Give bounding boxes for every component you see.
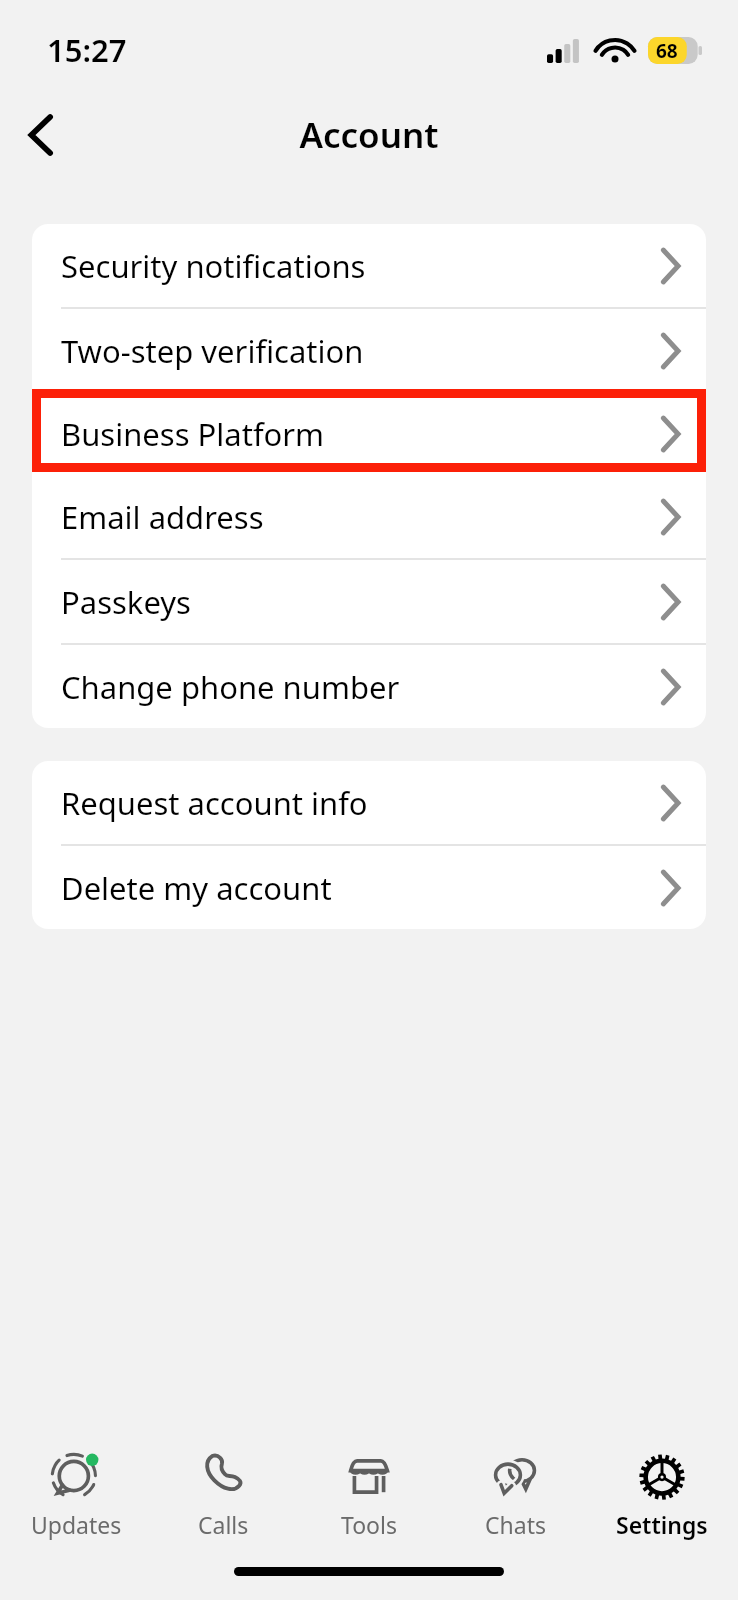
staticText: Calls (198, 1509, 249, 1540)
staticText: Settings (616, 1509, 708, 1540)
button[interactable]: Updates (6, 1443, 146, 1546)
staticText: Tools (341, 1509, 397, 1540)
staticText: Chats (485, 1509, 546, 1540)
button[interactable]: Chats (445, 1443, 585, 1546)
staticText: Request account info (61, 782, 661, 824)
button[interactable]: Change phone number (32, 645, 706, 728)
staticText: Passkeys (61, 581, 661, 623)
button[interactable]: Security notifications (32, 224, 706, 307)
button[interactable]: Email address (32, 475, 706, 558)
staticText: Business Platform (61, 413, 661, 455)
staticText: Email address (61, 496, 661, 538)
button[interactable]: Tools (299, 1443, 439, 1546)
staticText: Two-step verification (61, 330, 661, 372)
staticText: 68 (656, 38, 678, 64)
button[interactable]: Request account info (32, 761, 706, 844)
button[interactable]: Settings (592, 1443, 732, 1546)
staticText: 15:27 (47, 29, 127, 71)
button[interactable]: Delete my account (32, 846, 706, 929)
staticText: Updates (31, 1509, 122, 1540)
button[interactable]: Passkeys (32, 560, 706, 643)
button[interactable]: Back (0, 94, 82, 176)
button[interactable]: Business Platform (32, 392, 706, 475)
staticText: Account (0, 111, 738, 159)
button[interactable]: Calls (153, 1443, 293, 1546)
staticText: Delete my account (61, 867, 661, 909)
staticText: Change phone number (61, 666, 661, 708)
staticText: Security notifications (61, 245, 661, 287)
button[interactable]: Two-step verification (32, 309, 706, 392)
